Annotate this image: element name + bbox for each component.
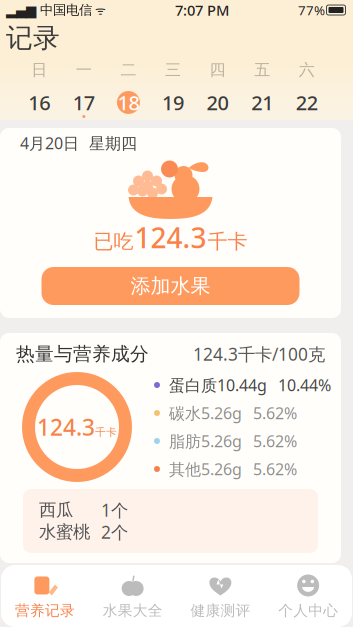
staticText: 三 <box>165 60 181 80</box>
staticText: 已吃 <box>93 229 133 254</box>
staticText: 124.3 <box>37 412 95 442</box>
staticText: 1个 <box>101 498 128 521</box>
button[interactable]: 添加水果 <box>41 267 299 305</box>
button[interactable]: 个人中心 <box>264 565 352 627</box>
staticText: 5.62% <box>253 430 297 452</box>
staticText: 17 <box>73 89 95 116</box>
staticText: 16 <box>28 89 50 116</box>
staticText: ▂▄▆ 中国电信 <box>6 2 92 18</box>
staticText: 脂肪5.26g <box>169 430 242 452</box>
staticText: 六 <box>299 60 315 80</box>
staticText: 日 <box>31 60 47 80</box>
button[interactable]: 21 <box>240 91 284 119</box>
staticText: 五 <box>254 60 270 80</box>
staticText: 21 <box>251 89 273 116</box>
staticText: 西瓜 <box>39 499 73 521</box>
button[interactable]: 20 <box>195 91 240 119</box>
staticText: 5.62% <box>253 402 297 424</box>
staticText: 其他5.26g <box>169 458 242 480</box>
button[interactable]: 水果大全 <box>89 565 177 627</box>
staticText: 10.44% <box>278 374 331 396</box>
staticText: 千卡 <box>207 229 247 254</box>
staticText: 水果大全 <box>103 601 163 619</box>
staticText: 124.3千卡/100克 <box>193 342 325 365</box>
staticText: 水蜜桃 <box>39 521 90 543</box>
staticText: 千卡 <box>95 426 117 439</box>
staticText: 20 <box>207 89 229 116</box>
button[interactable]: 16 <box>17 91 62 119</box>
button[interactable]: 22 <box>284 91 329 119</box>
button[interactable]: 健康测评 <box>176 565 264 627</box>
staticText: 健康测评 <box>190 601 250 619</box>
staticText: 记录 <box>6 22 60 54</box>
staticText: 22 <box>296 89 318 116</box>
button[interactable]: 18 <box>106 91 151 119</box>
staticText: 添加水果 <box>130 274 210 298</box>
staticText: 18 <box>117 89 139 116</box>
staticText: 四 <box>210 60 226 80</box>
staticText: 碳水5.26g <box>169 402 242 424</box>
button[interactable]: 17 <box>62 91 106 119</box>
staticText: 77% <box>298 1 325 19</box>
staticText: 5.62% <box>253 458 297 480</box>
staticText: 19 <box>162 89 184 116</box>
staticText: ᯤ <box>92 2 106 18</box>
button[interactable]: 营养记录 <box>1 565 89 627</box>
staticText: 二 <box>120 60 136 80</box>
staticText: 蛋白质10.44g <box>169 374 267 396</box>
staticText: 个人中心 <box>278 601 338 619</box>
button[interactable]: 19 <box>151 91 195 119</box>
staticText: 7:07 PM <box>175 0 229 20</box>
staticText: 124.3 <box>134 219 206 256</box>
staticText: 营养记录 <box>15 601 75 619</box>
staticText: 2个 <box>101 520 128 543</box>
staticText: 一 <box>76 60 92 80</box>
staticText: 热量与营养成分 <box>16 342 149 365</box>
staticText: 4月20日 星期四 <box>20 132 137 154</box>
